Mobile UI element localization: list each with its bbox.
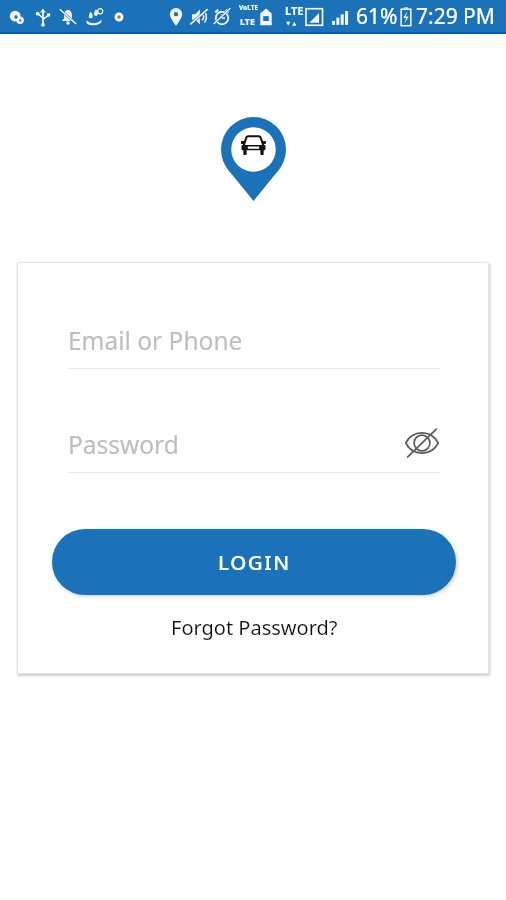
- staticText: Password: [68, 428, 179, 461]
- button[interactable]: Show password: [400, 421, 444, 465]
- staticText: Email or Phone: [68, 324, 243, 357]
- staticText: LTE: [240, 15, 256, 27]
- button[interactable]: Password: [68, 422, 440, 473]
- staticText: 7:29 PM: [416, 2, 495, 31]
- button[interactable]: LOGIN: [52, 529, 456, 595]
- staticText: 61%: [356, 2, 398, 31]
- staticText: LOGIN: [218, 548, 291, 576]
- staticText: LTE: [285, 3, 304, 18]
- staticText: Forgot Password?: [171, 614, 338, 641]
- button[interactable]: Email or Phone: [68, 318, 440, 369]
- button[interactable]: Forgot Password?: [154, 612, 354, 642]
- staticText: VoLTE: [239, 3, 259, 12]
